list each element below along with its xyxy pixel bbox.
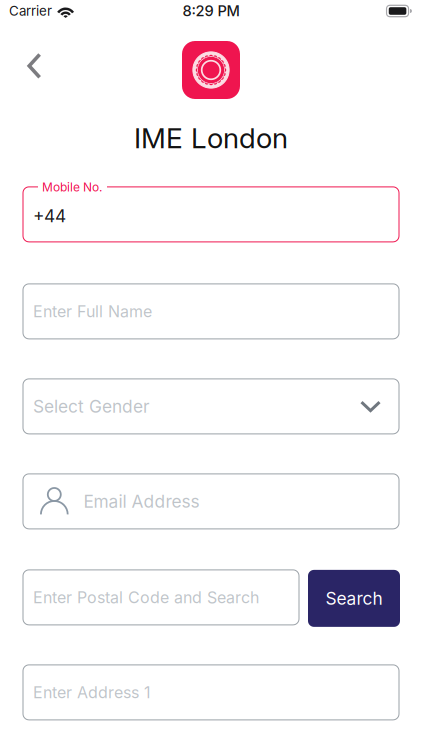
staticText: Select Gender [33, 396, 150, 417]
staticText: 8:29 PM [182, 2, 239, 20]
staticText: +44 [33, 205, 66, 226]
staticText: Search [325, 588, 382, 609]
button[interactable]: Email Address [23, 474, 399, 529]
button[interactable]: Enter Full Name [23, 284, 399, 339]
button[interactable]: Back [0, 50, 54, 89]
staticText: Carrier [9, 3, 52, 19]
button[interactable]: Enter Address 1 [23, 665, 399, 720]
staticText: Enter Postal Code and Search [33, 588, 259, 607]
button[interactable]: Search [308, 570, 400, 627]
button[interactable]: Enter Postal Code and Search [23, 570, 299, 625]
staticText: Mobile No. [42, 180, 102, 194]
button[interactable]: Select Gender [23, 379, 399, 434]
staticText: Enter Full Name [33, 302, 152, 321]
staticText: Enter Address 1 [33, 683, 151, 702]
staticText: IME London [134, 121, 288, 155]
staticText: Email Address [84, 491, 200, 512]
